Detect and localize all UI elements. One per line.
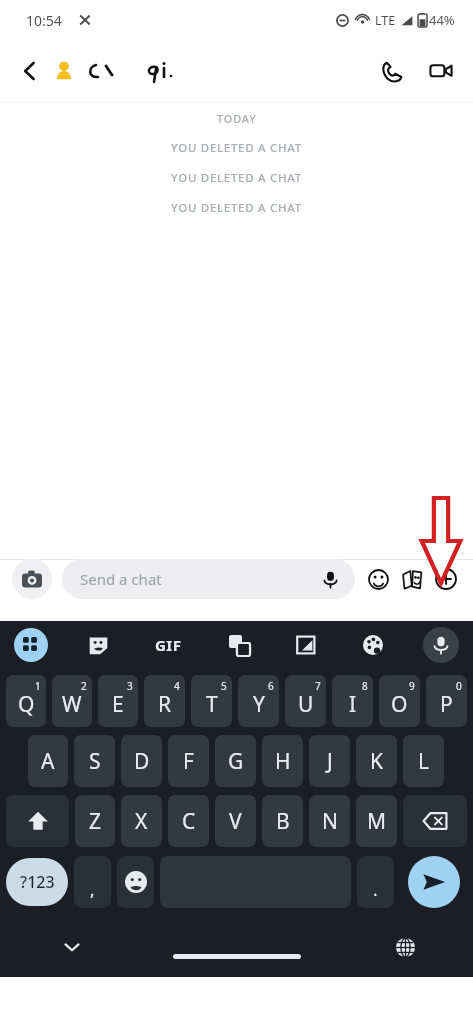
button[interactable]: Hide keyboard bbox=[52, 927, 92, 967]
staticText: LTE bbox=[375, 12, 396, 29]
staticText: 6 bbox=[268, 679, 274, 693]
staticText: TODAY bbox=[217, 111, 257, 126]
staticText: B bbox=[276, 807, 290, 836]
staticText: O bbox=[391, 690, 408, 719]
staticText: Q bbox=[18, 690, 35, 719]
staticText: 7 bbox=[315, 679, 321, 693]
button[interactable]: S bbox=[74, 735, 115, 787]
button[interactable]: M bbox=[356, 795, 397, 847]
button[interactable] bbox=[52, 59, 186, 83]
button[interactable]: L bbox=[403, 735, 444, 787]
staticText: GIF bbox=[155, 635, 182, 655]
button[interactable]: G bbox=[215, 735, 256, 787]
staticText: S bbox=[89, 747, 101, 776]
staticText: D bbox=[134, 747, 150, 776]
button[interactable]: V bbox=[215, 795, 256, 847]
button[interactable]: W bbox=[52, 675, 92, 727]
staticText: T bbox=[206, 690, 218, 719]
button[interactable]: Change language bbox=[385, 927, 425, 967]
staticText: . bbox=[373, 878, 378, 901]
button[interactable]: Stickers bbox=[363, 564, 393, 594]
staticText: M bbox=[367, 807, 387, 836]
button[interactable]: Camera bbox=[12, 559, 52, 599]
staticText: X bbox=[135, 807, 148, 836]
staticText: U bbox=[298, 690, 314, 719]
button[interactable]: Y bbox=[238, 675, 279, 727]
staticText: 3 bbox=[127, 679, 133, 693]
staticText: 4 bbox=[174, 679, 180, 693]
button[interactable]: Emoji bbox=[117, 856, 154, 908]
button[interactable]: Voice input bbox=[423, 627, 459, 663]
button[interactable]: K bbox=[356, 735, 397, 787]
button[interactable]: Theme bbox=[356, 628, 390, 662]
button[interactable]: E bbox=[98, 675, 138, 727]
button[interactable]: GIF bbox=[148, 625, 188, 665]
staticText: 10:54 bbox=[26, 11, 62, 30]
staticText: 2 bbox=[81, 679, 87, 693]
button[interactable]: I bbox=[332, 675, 373, 727]
button[interactable]: Send bbox=[408, 856, 460, 908]
button[interactable]: Cameos bbox=[397, 564, 427, 594]
staticText: J bbox=[327, 747, 333, 776]
staticText: 9 bbox=[409, 679, 415, 693]
button[interactable]: P bbox=[426, 675, 467, 727]
button[interactable]: Voice message bbox=[317, 566, 343, 592]
button[interactable]: F bbox=[168, 735, 209, 787]
staticText: YOU DELETED A CHAT bbox=[171, 140, 302, 156]
button[interactable]: Clipboard bbox=[289, 628, 323, 662]
staticText: Y bbox=[253, 690, 265, 719]
staticText: H bbox=[275, 747, 291, 776]
staticText: L bbox=[418, 747, 430, 776]
button[interactable]: Translate bbox=[222, 628, 256, 662]
button[interactable]: T bbox=[191, 675, 232, 727]
staticText: P bbox=[440, 690, 453, 719]
button[interactable]: Send a chat bbox=[62, 559, 355, 599]
button[interactable]: C bbox=[168, 795, 209, 847]
staticText: Z bbox=[89, 807, 102, 836]
staticText: G bbox=[228, 747, 244, 776]
staticText: F bbox=[183, 747, 194, 776]
button[interactable]: Stickers bbox=[81, 628, 115, 662]
staticText: V bbox=[229, 807, 242, 836]
button[interactable]: Voice call bbox=[369, 49, 413, 93]
button[interactable]: , bbox=[74, 856, 111, 908]
staticText: 0 bbox=[456, 679, 462, 693]
staticText: C bbox=[182, 807, 196, 836]
button[interactable]: Backspace bbox=[403, 795, 467, 847]
button[interactable]: Shift bbox=[6, 795, 69, 847]
staticText: 8 bbox=[362, 679, 368, 693]
staticText: 1 bbox=[35, 679, 41, 693]
button[interactable]: Video call bbox=[419, 49, 463, 93]
staticText: YOU DELETED A CHAT bbox=[171, 200, 302, 216]
staticText: I bbox=[349, 690, 357, 719]
staticText: N bbox=[322, 807, 338, 836]
staticText: R bbox=[158, 690, 172, 719]
button[interactable]: H bbox=[262, 735, 303, 787]
staticText: ?123 bbox=[20, 871, 55, 893]
staticText: YOU DELETED A CHAT bbox=[171, 170, 302, 186]
button[interactable]: Toolbox bbox=[14, 628, 48, 662]
staticText: 44% bbox=[429, 11, 455, 29]
staticText: A bbox=[41, 747, 55, 776]
button[interactable]: N bbox=[309, 795, 350, 847]
button[interactable]: R bbox=[144, 675, 185, 727]
staticText: 5 bbox=[221, 679, 227, 693]
button[interactable]: Z bbox=[75, 795, 115, 847]
staticText: E bbox=[112, 690, 124, 719]
button[interactable]: O bbox=[379, 675, 420, 727]
button[interactable]: X bbox=[121, 795, 162, 847]
button[interactable]: A bbox=[28, 735, 68, 787]
button[interactable]: Q bbox=[6, 675, 46, 727]
button[interactable]: U bbox=[285, 675, 326, 727]
button[interactable]: . bbox=[357, 856, 394, 908]
button[interactable]: B bbox=[262, 795, 303, 847]
staticText: , bbox=[90, 878, 95, 901]
button[interactable]: More options bbox=[431, 564, 461, 594]
staticText: K bbox=[370, 747, 383, 776]
staticText: Send a chat bbox=[80, 569, 317, 589]
button[interactable]: ?123 bbox=[6, 858, 68, 906]
button[interactable]: Back bbox=[8, 49, 52, 93]
button[interactable]: D bbox=[121, 735, 162, 787]
button[interactable]: J bbox=[309, 735, 350, 787]
